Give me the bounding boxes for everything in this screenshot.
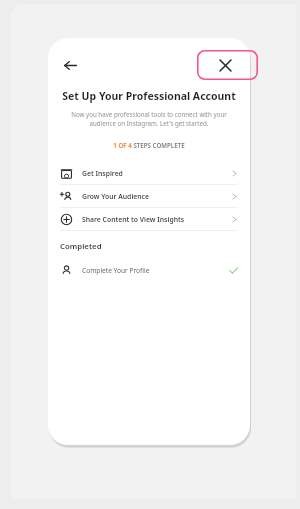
staticText: Get Inspired	[82, 169, 123, 178]
staticText: Set Up Your Professional Account	[58, 89, 240, 103]
button[interactable]: Grow Your Audience	[48, 185, 250, 207]
button[interactable]: Back	[60, 55, 80, 75]
button[interactable]: Get Inspired	[48, 162, 250, 184]
staticText: 1 OF 4 STEPS COMPLETE	[48, 141, 250, 149]
staticText: Completed	[60, 241, 102, 252]
staticText: Now you have professional tools to conne…	[64, 110, 234, 128]
staticText: Complete Your Profile	[82, 266, 150, 275]
button[interactable]: Share Content to View Insights	[48, 208, 250, 230]
button[interactable]: Complete Your Profile	[48, 260, 250, 281]
staticText: Share Content to View Insights	[82, 215, 185, 224]
button[interactable]: Close	[215, 55, 235, 75]
staticText: Grow Your Audience	[82, 192, 150, 201]
